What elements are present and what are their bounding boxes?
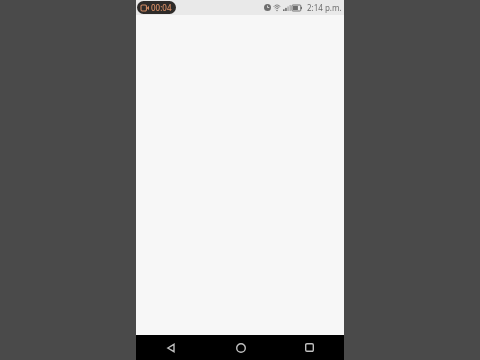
button[interactable]: Home bbox=[206, 335, 275, 360]
button[interactable]: Recent apps bbox=[275, 335, 344, 360]
staticText: 00:04 bbox=[151, 2, 172, 13]
staticText: 2:14 p.m. bbox=[307, 2, 342, 13]
button[interactable]: 00:04 bbox=[137, 1, 176, 14]
button[interactable]: Back bbox=[136, 335, 206, 360]
